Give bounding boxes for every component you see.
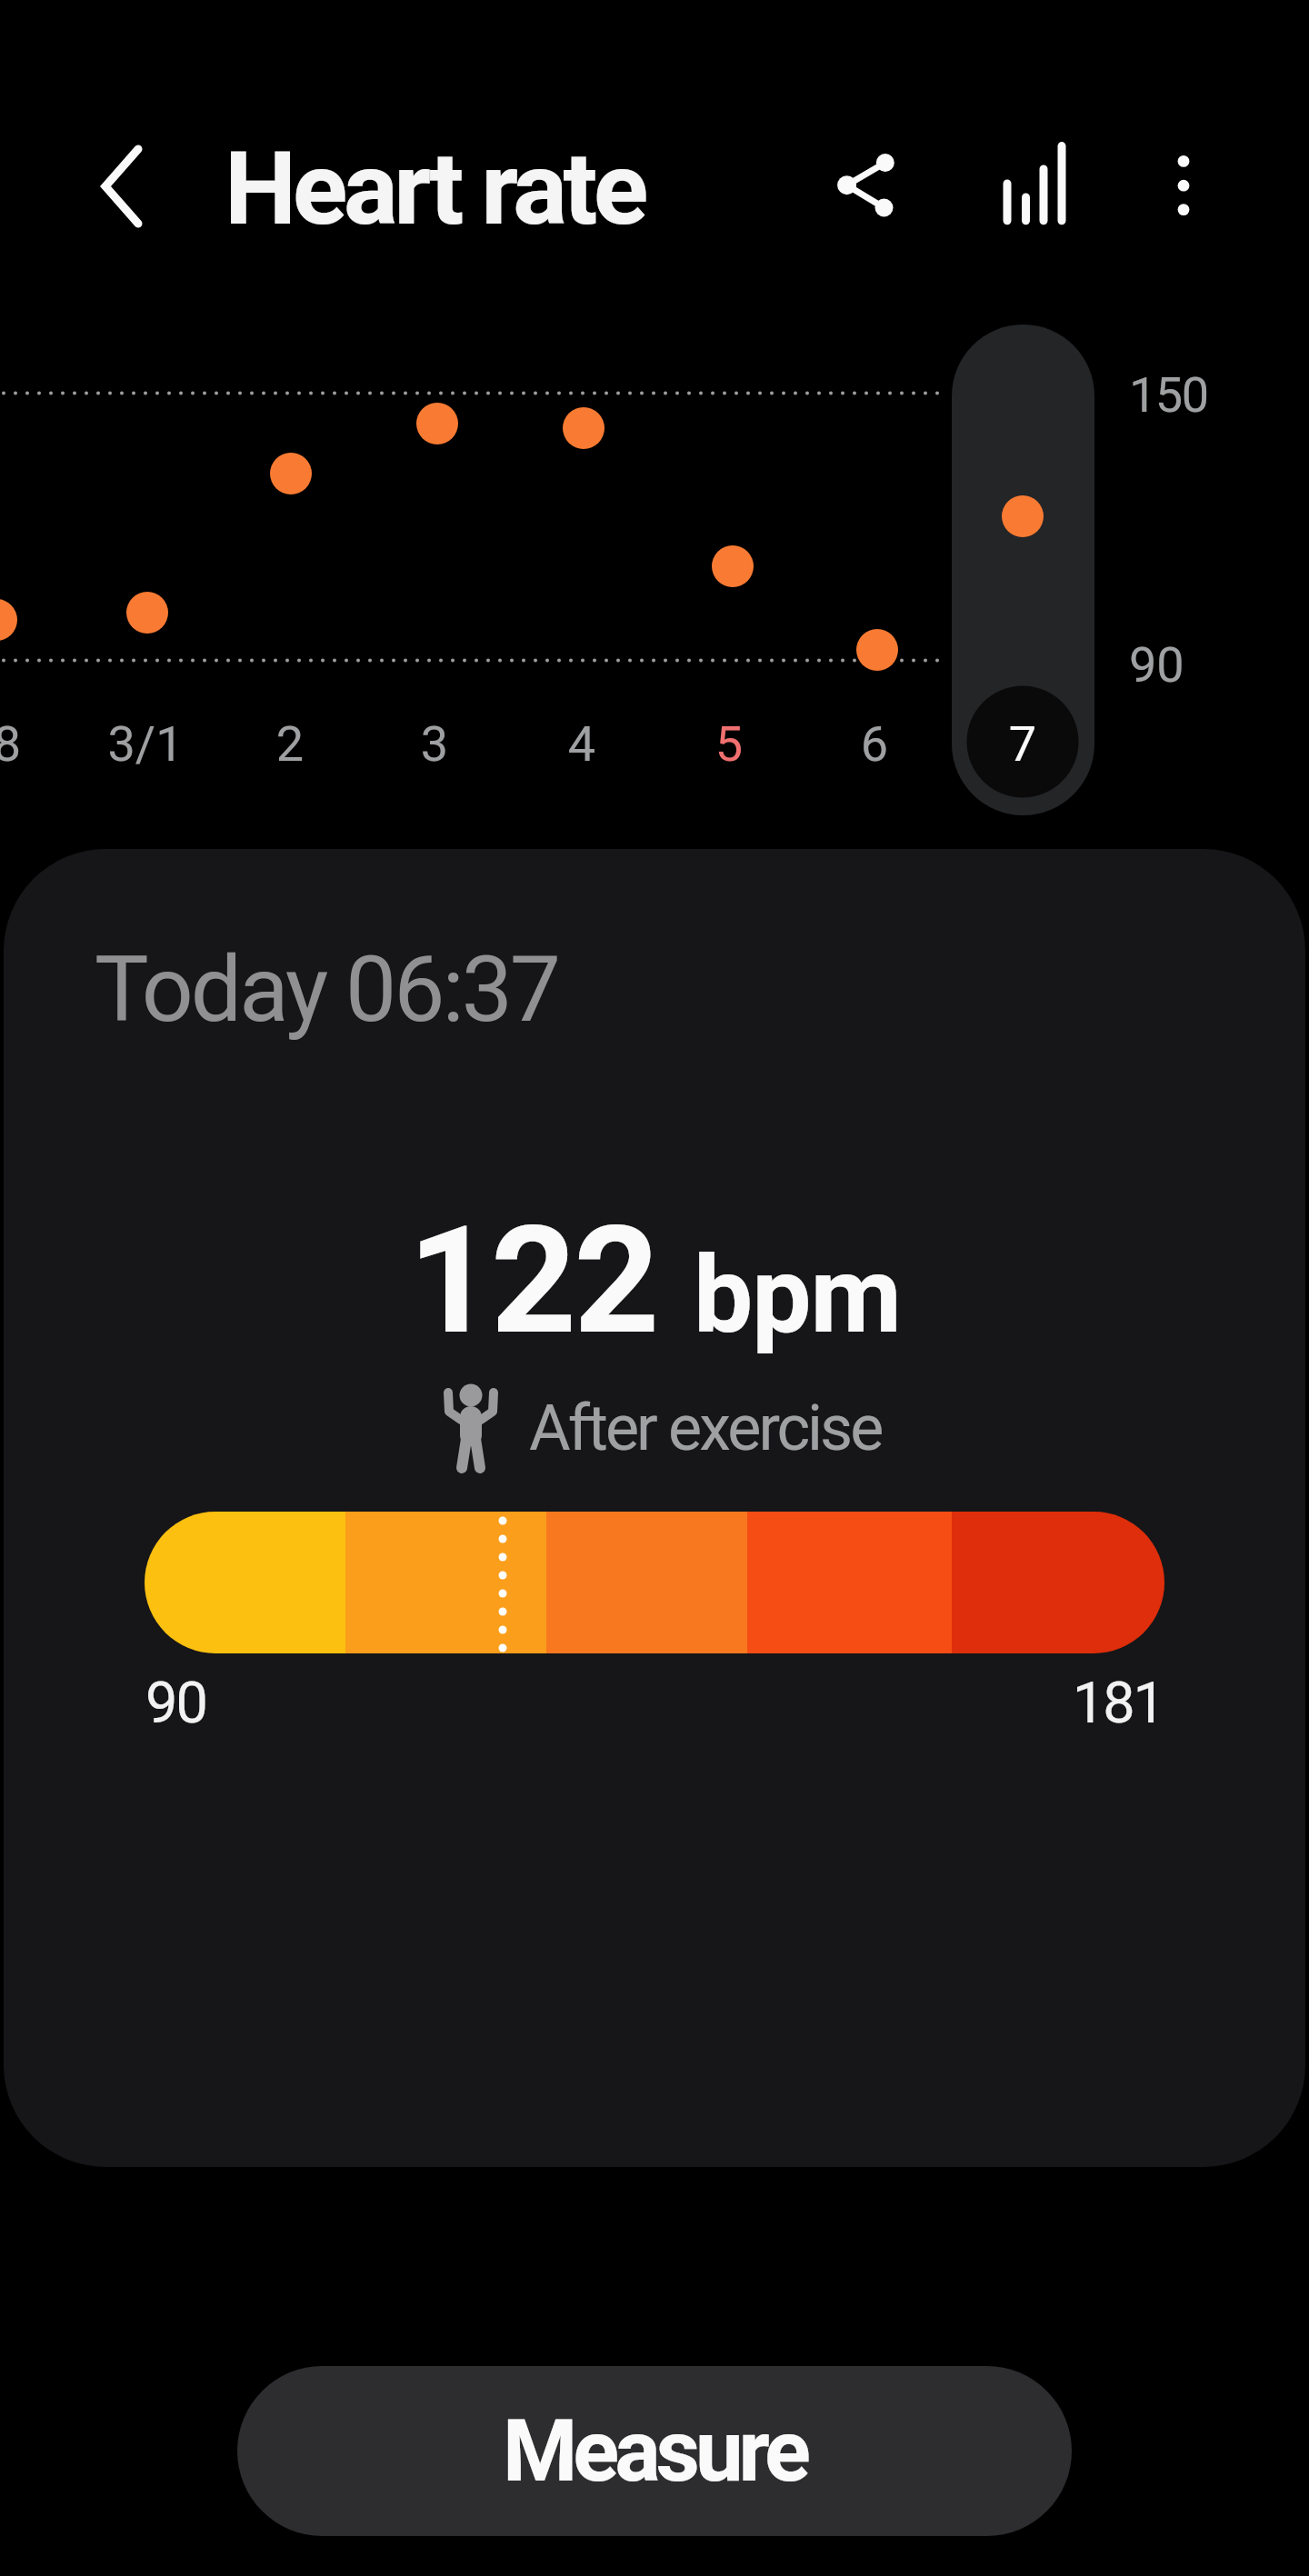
button[interactable]	[818, 127, 927, 236]
staticText: 3/1	[91, 715, 200, 773]
staticText: 90	[1129, 636, 1184, 694]
staticText: 7	[968, 715, 1077, 773]
staticText: Heart rate	[225, 129, 645, 248]
staticText: 8	[0, 715, 62, 773]
button[interactable]	[674, 691, 784, 800]
staticText: Today 06:37	[95, 936, 559, 1043]
button[interactable]	[1147, 127, 1220, 236]
staticText: 3	[380, 715, 489, 773]
button[interactable]	[527, 691, 636, 800]
staticText: 4	[527, 715, 636, 773]
staticText: 90	[145, 1670, 206, 1737]
staticText: Measure	[503, 2401, 806, 2501]
staticText: After exercise	[529, 1391, 882, 1465]
staticText: 122	[408, 1193, 657, 1368]
button[interactable]	[982, 127, 1091, 236]
button[interactable]	[820, 691, 929, 800]
button[interactable]	[952, 324, 1094, 815]
button[interactable]	[235, 691, 345, 800]
button[interactable]	[380, 691, 489, 800]
button[interactable]: Measure	[237, 2366, 1072, 2536]
staticText: 5	[674, 715, 784, 773]
staticText: 150	[1129, 366, 1208, 424]
staticText: 6	[820, 715, 929, 773]
button[interactable]	[91, 691, 200, 800]
staticText: 2	[235, 715, 345, 773]
staticText: bpm	[694, 1233, 902, 1357]
button[interactable]	[0, 691, 62, 800]
staticText: 181	[1018, 1670, 1164, 1737]
button[interactable]	[78, 127, 160, 245]
